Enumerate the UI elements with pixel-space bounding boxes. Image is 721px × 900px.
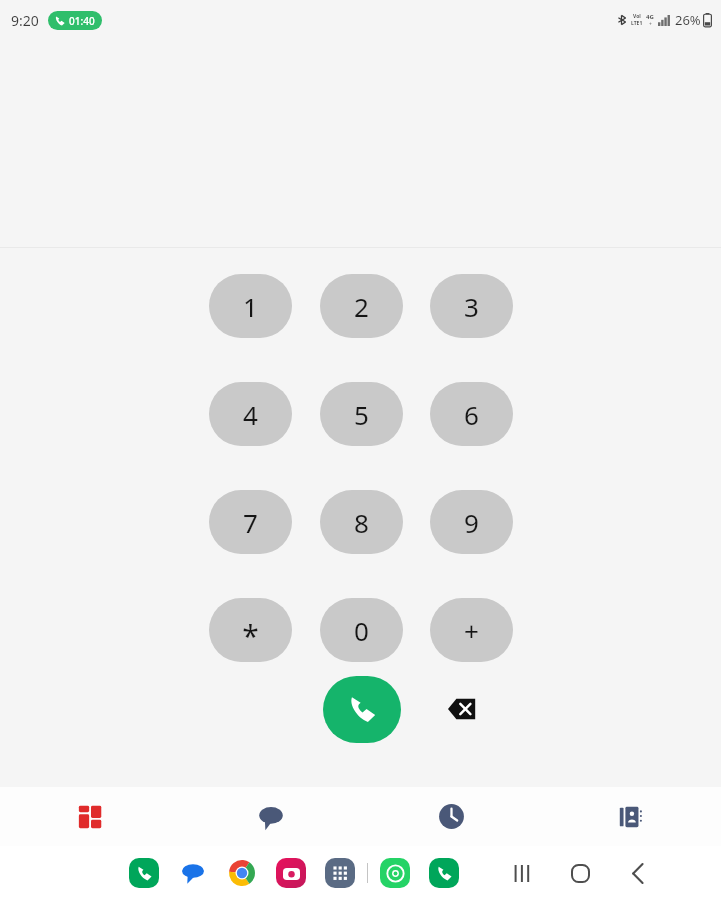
button[interactable]: Back [616,851,660,895]
button[interactable]: 2 [320,274,403,338]
button[interactable]: Apps [324,857,356,889]
staticText: * [242,615,259,656]
staticText: 9:20 [11,11,39,30]
button[interactable]: Recents [361,787,541,846]
staticText: 01:40 [69,14,95,28]
button[interactable]: Backspace [438,685,486,733]
staticText: 7 [243,505,258,540]
button[interactable]: Phone [128,857,160,889]
button[interactable]: Messages [181,787,361,846]
staticText: 4G [646,13,654,21]
button[interactable]: Recent apps [500,851,544,895]
staticText: 3 [464,289,479,324]
staticText: + [464,613,479,648]
staticText: 0 [354,613,369,648]
staticText: LTE1 [631,20,643,27]
staticText: 1 [243,289,258,324]
button[interactable]: Call [323,676,401,743]
staticText: 4 [243,397,258,432]
staticText: 9 [464,505,479,540]
button[interactable]: 9 [430,490,513,554]
button[interactable]: 3 [430,274,513,338]
button[interactable]: 5 [320,382,403,446]
button[interactable]: WhatsApp [379,857,411,889]
staticText: 26% [675,11,701,29]
button[interactable]: Dialer [428,857,460,889]
button[interactable]: Messages [177,857,209,889]
button[interactable]: * [209,598,292,662]
staticText: 6 [464,397,479,432]
button[interactable]: 1 [209,274,292,338]
button[interactable]: 0 [320,598,403,662]
button[interactable]: 6 [430,382,513,446]
staticText: Vol [633,13,641,20]
staticText: 8 [354,505,369,540]
button[interactable]: 8 [320,490,403,554]
button[interactable]: Chrome [226,857,258,889]
staticText: 2 [354,289,369,324]
staticText: 5 [354,397,369,432]
button[interactable]: Instagram [275,857,307,889]
button[interactable]: Home [558,851,602,895]
button[interactable]: 7 [209,490,292,554]
button[interactable]: + [430,598,513,662]
button[interactable]: Keypad [0,787,181,846]
button[interactable]: 4 [209,382,292,446]
staticText: + [649,21,652,28]
button[interactable]: Contacts [541,787,721,846]
